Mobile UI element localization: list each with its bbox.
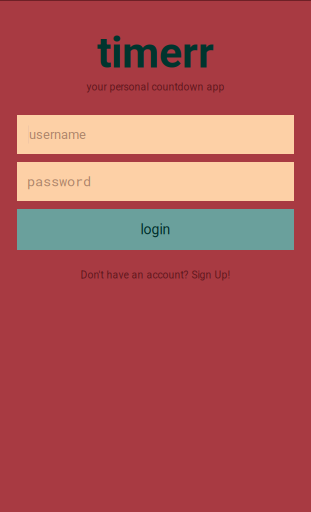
staticText: login bbox=[140, 221, 170, 238]
button[interactable]: login bbox=[17, 209, 294, 250]
staticText: timerr bbox=[97, 28, 214, 78]
staticText: username bbox=[29, 127, 86, 142]
staticText: password bbox=[27, 172, 91, 190]
button[interactable]: password bbox=[17, 162, 294, 201]
staticText: your personal countdown app bbox=[86, 81, 224, 93]
staticText: Don't have an account? Sign Up! bbox=[80, 269, 230, 281]
button[interactable]: username bbox=[17, 115, 294, 154]
button[interactable]: Don't have an account? Sign Up! bbox=[80, 269, 230, 281]
